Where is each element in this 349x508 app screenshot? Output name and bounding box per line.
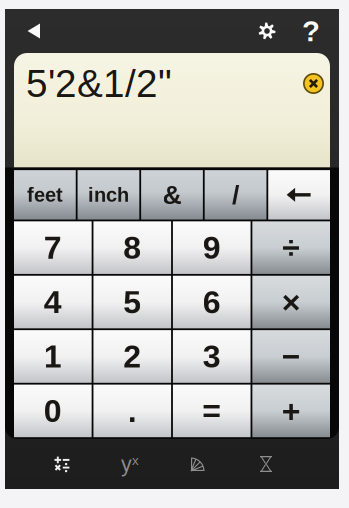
- staticText: ?: [302, 15, 320, 47]
- button[interactable]: feet: [14, 170, 76, 219]
- staticText: /: [232, 180, 239, 210]
- button[interactable]: Powers: [105, 441, 155, 487]
- button[interactable]: 7: [14, 221, 92, 274]
- staticText: ×: [282, 284, 301, 320]
- staticText: 5: [123, 284, 141, 320]
- staticText: 7: [44, 230, 62, 265]
- button[interactable]: ÷: [252, 221, 330, 274]
- button[interactable]: &: [141, 170, 203, 219]
- staticText: 5'2&1/2": [26, 62, 172, 105]
- button[interactable]: 8: [93, 221, 171, 274]
- staticText: x: [132, 453, 139, 468]
- button[interactable]: =: [173, 385, 251, 437]
- button[interactable]: Time: [241, 441, 291, 487]
- button[interactable]: +: [252, 385, 330, 437]
- staticText: 0: [44, 393, 62, 429]
- button[interactable]: 9: [173, 221, 251, 274]
- button[interactable]: 6: [173, 276, 251, 328]
- button[interactable]: /: [205, 170, 266, 219]
- button[interactable]: 2: [93, 330, 171, 383]
- staticText: =: [202, 393, 221, 429]
- button[interactable]: 0: [14, 385, 92, 437]
- staticText: 8: [123, 230, 141, 265]
- button[interactable]: 5: [93, 276, 171, 328]
- button[interactable]: Backspace: [268, 170, 330, 219]
- button[interactable]: Clear: [298, 68, 328, 98]
- button[interactable]: 4: [14, 276, 92, 328]
- button[interactable]: inch: [78, 170, 139, 219]
- staticText: &: [162, 180, 181, 210]
- button[interactable]: .: [93, 385, 171, 437]
- button[interactable]: ×: [252, 276, 330, 328]
- staticText: ÷: [282, 230, 300, 265]
- staticText: 2: [123, 339, 141, 374]
- staticText: 9: [203, 230, 221, 265]
- staticText: +: [282, 393, 301, 429]
- button[interactable]: Help: [297, 11, 325, 51]
- button[interactable]: −: [252, 330, 330, 383]
- staticText: 6: [203, 284, 221, 320]
- staticText: −: [282, 339, 301, 374]
- staticText: 4: [44, 284, 62, 320]
- staticText: 1: [44, 339, 62, 374]
- button[interactable]: Arithmetic: [37, 441, 87, 487]
- button[interactable]: Back: [17, 11, 51, 51]
- button[interactable]: Geometry: [173, 441, 223, 487]
- button[interactable]: Settings: [247, 11, 287, 51]
- staticText: inch: [88, 184, 129, 206]
- staticText: 3: [203, 339, 221, 374]
- button[interactable]: 3: [173, 330, 251, 383]
- button[interactable]: 1: [14, 330, 92, 383]
- staticText: .: [128, 393, 137, 429]
- staticText: y: [121, 452, 132, 476]
- staticText: feet: [27, 184, 63, 206]
